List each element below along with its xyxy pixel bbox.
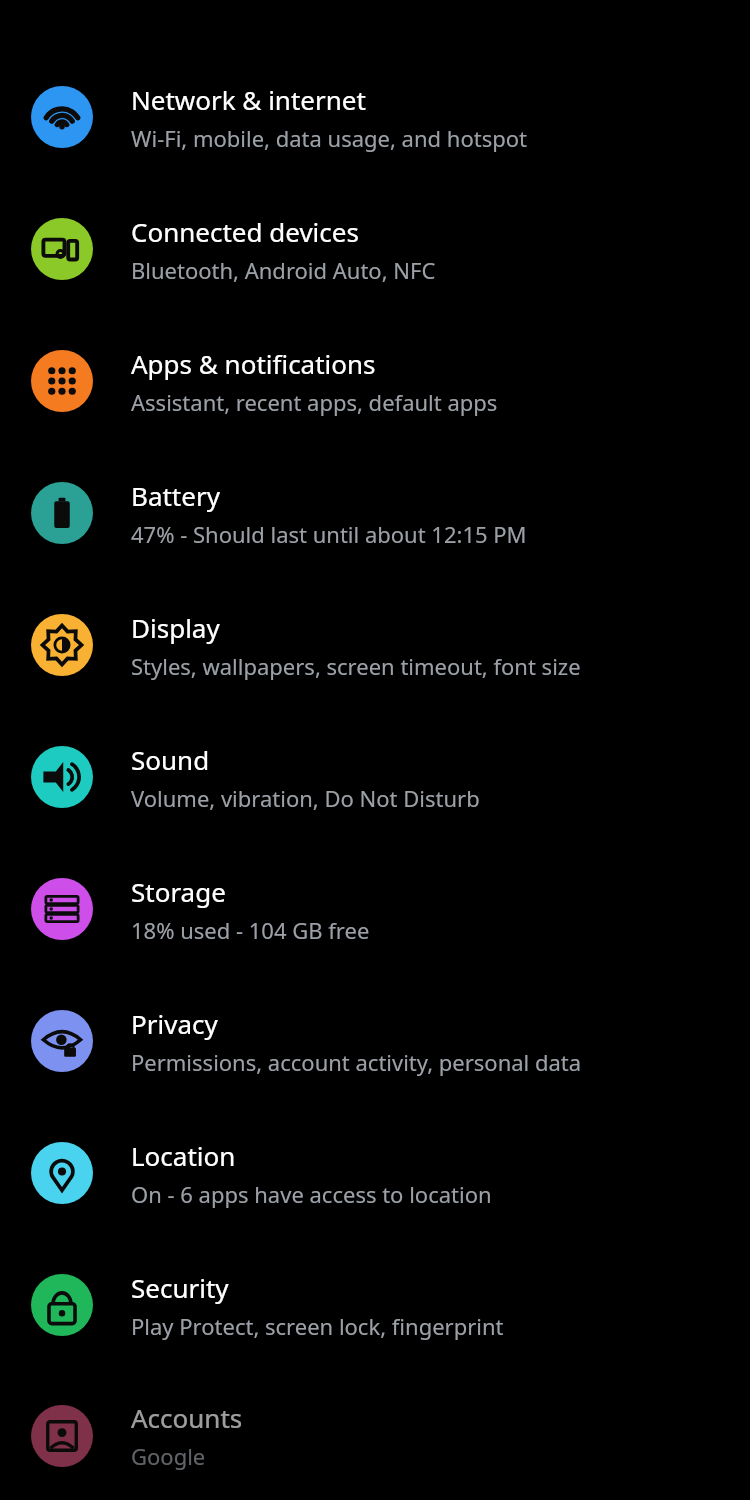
button[interactable]: Accounts [0, 1371, 750, 1500]
button[interactable]: Connected devices [0, 183, 750, 315]
button[interactable]: Sound [0, 711, 750, 843]
staticText: 18% used - 104 GB free [131, 915, 370, 945]
button[interactable]: Location [0, 1107, 750, 1239]
staticText: Network & internet [131, 82, 366, 117]
button[interactable]: Battery [0, 447, 750, 579]
staticText: Styles, wallpapers, screen timeout, font… [131, 651, 581, 681]
staticText: Permissions, account activity, personal … [131, 1047, 582, 1077]
staticText: Connected devices [131, 214, 359, 249]
staticText: Apps & notifications [131, 346, 376, 381]
button[interactable]: Storage [0, 843, 750, 975]
staticText: Volume, vibration, Do Not Disturb [131, 783, 480, 813]
staticText: Display [131, 610, 220, 645]
staticText: Storage [131, 874, 226, 909]
button[interactable]: Display [0, 579, 750, 711]
staticText: Sound [131, 742, 210, 777]
staticText: Privacy [131, 1006, 218, 1041]
staticText: Assistant, recent apps, default apps [131, 387, 498, 417]
button[interactable]: Security [0, 1239, 750, 1371]
staticText: Wi-Fi, mobile, data usage, and hotspot [131, 123, 527, 153]
button[interactable]: Network & internet [0, 51, 750, 183]
staticText: 47% - Should last until about 12:15 PM [131, 519, 527, 549]
staticText: Play Protect, screen lock, fingerprint [131, 1311, 504, 1341]
staticText: Accounts [131, 1400, 243, 1435]
staticText: Security [131, 1270, 229, 1305]
staticText: Google [131, 1441, 206, 1471]
staticText: Location [131, 1138, 236, 1173]
button[interactable]: Apps & notifications [0, 315, 750, 447]
staticText: On - 6 apps have access to location [131, 1179, 492, 1209]
staticText: Bluetooth, Android Auto, NFC [131, 255, 436, 285]
staticText: Battery [131, 478, 220, 513]
button[interactable]: Privacy [0, 975, 750, 1107]
